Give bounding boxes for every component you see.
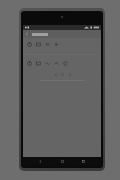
button[interactable]: Screen xyxy=(34,59,43,68)
button[interactable]: Rotate xyxy=(61,59,70,68)
button[interactable]: Previous xyxy=(52,71,59,78)
button[interactable]: Up xyxy=(52,59,61,68)
button[interactable]: Volume xyxy=(43,40,52,49)
button[interactable]: Next xyxy=(66,71,73,78)
button[interactable]: Play xyxy=(52,40,61,49)
button[interactable]: Wave xyxy=(43,59,52,68)
button[interactable]: Power xyxy=(25,59,34,68)
button[interactable]: Screen xyxy=(34,40,43,49)
button[interactable]: Home xyxy=(58,157,67,166)
button[interactable]: Toggle xyxy=(59,71,66,78)
button[interactable]: Power xyxy=(25,40,34,49)
button[interactable]: Back xyxy=(36,157,45,166)
button[interactable]: Recent apps xyxy=(79,157,88,166)
button[interactable]: Navigate up xyxy=(23,30,31,38)
